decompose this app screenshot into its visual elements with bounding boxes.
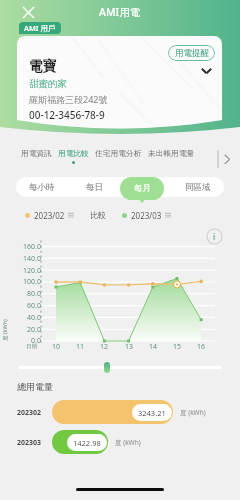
button[interactable]: 同區域 <box>172 177 224 197</box>
staticText: 度 (kWh) <box>115 438 141 447</box>
button[interactable]: Info <box>206 228 223 245</box>
button[interactable]: Expand <box>198 62 215 79</box>
staticText: 未出帳用電量 <box>148 149 195 159</box>
staticText: 度 (kWh) <box>1 319 9 341</box>
staticText: 15 <box>173 342 182 352</box>
staticText: 100.0 <box>0 277 41 287</box>
button[interactable]: 每日 <box>68 177 120 197</box>
staticText: 120.0 <box>0 266 41 276</box>
button[interactable]: 每小時 <box>16 177 68 197</box>
staticText: 用電比較 <box>58 149 89 159</box>
staticText: 11 <box>76 342 85 352</box>
staticText: 60.0 <box>0 301 41 311</box>
staticText: 0.0 <box>0 336 41 346</box>
staticText: 14 <box>149 342 158 352</box>
staticText: 16 <box>197 342 206 352</box>
staticText: 202302 <box>17 408 42 418</box>
staticText: 用電資訊 <box>21 149 52 159</box>
staticText: 住宅用電分析 <box>95 149 142 159</box>
staticText: 2023/02 <box>34 210 65 221</box>
staticText: 3243.21 <box>138 408 166 418</box>
staticText: 140.0 <box>0 254 41 264</box>
button[interactable]: 用電提醒 <box>168 45 215 61</box>
button[interactable]: 未出帳用電量 <box>145 149 198 164</box>
staticText: AMI 用戶 <box>24 23 56 33</box>
staticText: 1422.98 <box>73 438 101 448</box>
button[interactable]: 用電比較 <box>55 149 92 164</box>
staticText: 度 (kWh) <box>180 408 206 417</box>
staticText: 同區域 <box>185 182 211 193</box>
staticText: 10 <box>52 342 61 352</box>
button[interactable]: More tabs <box>217 149 235 169</box>
staticText: 甜蜜的家 <box>29 78 67 90</box>
staticText: 202303 <box>17 438 42 448</box>
staticText: 20.0 <box>0 325 41 335</box>
button[interactable]: 3243.21 <box>52 400 173 424</box>
staticText: 羅斯福路三段242號 <box>29 93 108 105</box>
staticText: 13 <box>125 342 134 352</box>
staticText: 每小時 <box>29 182 55 193</box>
staticText: AMI用電 <box>99 5 141 19</box>
button[interactable]: AMI 用戶 <box>19 22 61 34</box>
button[interactable]: 1422.98 <box>52 430 108 454</box>
staticText: 電寶 <box>29 58 56 75</box>
staticText: 12 <box>100 342 109 352</box>
staticText: 2023/03 <box>131 210 162 221</box>
staticText: 每月 <box>134 183 151 194</box>
button[interactable]: 住宅用電分析 <box>92 149 145 164</box>
staticText: 用電提醒 <box>175 48 209 59</box>
button[interactable]: 每月 <box>120 177 164 200</box>
staticText: 160.0 <box>0 242 41 252</box>
staticText: 00-12-3456-78-9 <box>29 108 105 122</box>
staticText: 日期 <box>26 343 37 350</box>
button[interactable]: 用電資訊 <box>18 149 55 164</box>
staticText: i <box>213 231 216 242</box>
staticText: 每日 <box>86 182 103 193</box>
button[interactable]: Close <box>18 2 38 22</box>
staticText: 比較 <box>90 210 106 220</box>
staticText: 40.0 <box>0 313 41 323</box>
staticText: 總用電量 <box>17 381 53 392</box>
staticText: 80.0 <box>0 289 41 299</box>
